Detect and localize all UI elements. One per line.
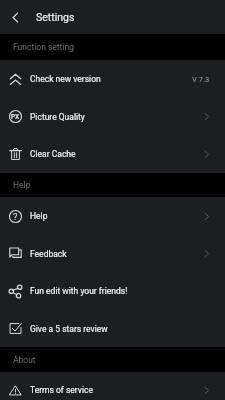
staticText: ? [13, 211, 18, 222]
button[interactable]: Fun edit with your friends! [0, 272, 225, 310]
staticText: V 7.3 [192, 75, 210, 84]
button[interactable]: ? [0, 197, 225, 235]
button[interactable]: Terms of service [0, 372, 225, 400]
staticText: Fun edit with your friends! [30, 286, 128, 296]
staticText: Picture Quality [30, 112, 85, 122]
staticText: PX [11, 113, 20, 121]
staticText: Give a 5 stars review [30, 324, 108, 334]
button[interactable]: Clear Cache [0, 135, 225, 173]
staticText: Help [13, 180, 31, 190]
staticText: Settings [36, 11, 75, 23]
staticText: Check new version [30, 74, 101, 84]
button[interactable]: Feedback [0, 235, 225, 272]
staticText: About [13, 355, 36, 365]
button[interactable]: PX [0, 98, 225, 135]
staticText: Help [30, 211, 48, 221]
staticText: Clear Cache [30, 149, 76, 159]
staticText: Terms of service [30, 385, 93, 395]
button[interactable]: Check new version [0, 60, 225, 98]
button[interactable]: Back [0, 0, 30, 34]
staticText: Function setting [13, 42, 74, 52]
button[interactable]: Give a 5 stars review [0, 310, 225, 347]
staticText: Feedback [30, 249, 67, 259]
